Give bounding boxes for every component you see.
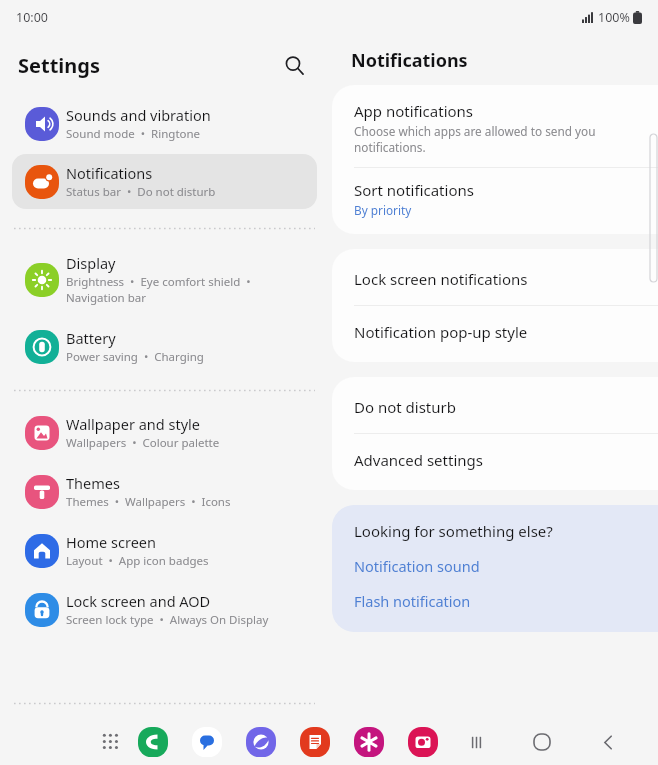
button[interactable]: Recents bbox=[454, 720, 498, 764]
button[interactable]: Notifications bbox=[12, 154, 317, 209]
button[interactable]: Home bbox=[520, 720, 564, 764]
staticText: Layout • App icon badges bbox=[66, 553, 209, 569]
staticText: Lock screen and AOD bbox=[66, 591, 211, 611]
staticText: Power saving • Charging bbox=[66, 349, 204, 365]
staticText: Sound mode • Ringtone bbox=[66, 126, 201, 142]
staticText: Settings bbox=[18, 52, 100, 79]
staticText: Wallpaper and style bbox=[66, 414, 200, 434]
staticText: Looking for something else? bbox=[354, 521, 553, 541]
button[interactable]: Messages bbox=[188, 723, 226, 761]
staticText: Themes bbox=[66, 473, 120, 493]
staticText: Advanced settings bbox=[354, 450, 483, 470]
button[interactable]: Lock screen and AOD bbox=[12, 582, 317, 637]
button[interactable]: Battery bbox=[12, 319, 317, 374]
button[interactable]: Notification pop-up style bbox=[332, 306, 658, 358]
staticText: Lock screen notifications bbox=[354, 269, 528, 289]
staticText: App notifications bbox=[354, 101, 474, 121]
button[interactable]: Home screen bbox=[12, 523, 317, 578]
button[interactable]: Internet bbox=[242, 723, 280, 761]
staticText: Brightness • Eye comfort shield • Naviga… bbox=[66, 274, 251, 306]
button[interactable]: Camera bbox=[404, 723, 442, 761]
staticText: By priority bbox=[354, 202, 412, 218]
staticText: Status bar • Do not disturb bbox=[66, 184, 216, 200]
button[interactable]: Search bbox=[277, 48, 311, 82]
button[interactable]: Do not disturb bbox=[332, 381, 658, 433]
staticText: Choose which apps are allowed to send yo… bbox=[354, 123, 596, 155]
button[interactable]: Phone bbox=[134, 723, 172, 761]
button[interactable]: Wallpaper and style bbox=[12, 405, 317, 460]
staticText: 10:00 bbox=[16, 9, 48, 26]
staticText: Notification pop-up style bbox=[354, 322, 528, 342]
button[interactable]: Advanced settings bbox=[332, 434, 658, 486]
button[interactable]: Sounds and vibration bbox=[12, 96, 317, 151]
button[interactable]: Flash notification bbox=[332, 588, 658, 614]
staticText: Screen lock type • Always On Display bbox=[66, 612, 269, 628]
staticText: Battery bbox=[66, 328, 116, 348]
staticText: Sort notifications bbox=[354, 180, 474, 200]
button[interactable]: Themes bbox=[12, 464, 317, 519]
button[interactable]: Notes bbox=[296, 723, 334, 761]
button[interactable]: Sort notifications bbox=[332, 168, 658, 230]
staticText: Themes • Wallpapers • Icons bbox=[66, 494, 231, 510]
button[interactable]: Galaxy Store bbox=[350, 723, 388, 761]
button[interactable]: Display bbox=[12, 244, 317, 315]
staticText: Do not disturb bbox=[354, 397, 456, 417]
staticText: Display bbox=[66, 253, 116, 273]
staticText: 100% bbox=[598, 9, 630, 26]
staticText: Wallpapers • Colour palette bbox=[66, 435, 220, 451]
staticText: Flash notification bbox=[354, 591, 471, 611]
staticText: Sounds and vibration bbox=[66, 105, 211, 125]
button[interactable]: Notification sound bbox=[332, 553, 658, 579]
staticText: Home screen bbox=[66, 532, 156, 552]
button[interactable]: Lock screen notifications bbox=[332, 253, 658, 305]
button[interactable]: Back bbox=[586, 720, 630, 764]
staticText: Notifications bbox=[66, 163, 153, 183]
button[interactable]: Apps bbox=[92, 723, 130, 761]
staticText: Notifications bbox=[351, 48, 468, 73]
staticText: Notification sound bbox=[354, 556, 480, 576]
button[interactable]: App notifications bbox=[332, 89, 658, 167]
